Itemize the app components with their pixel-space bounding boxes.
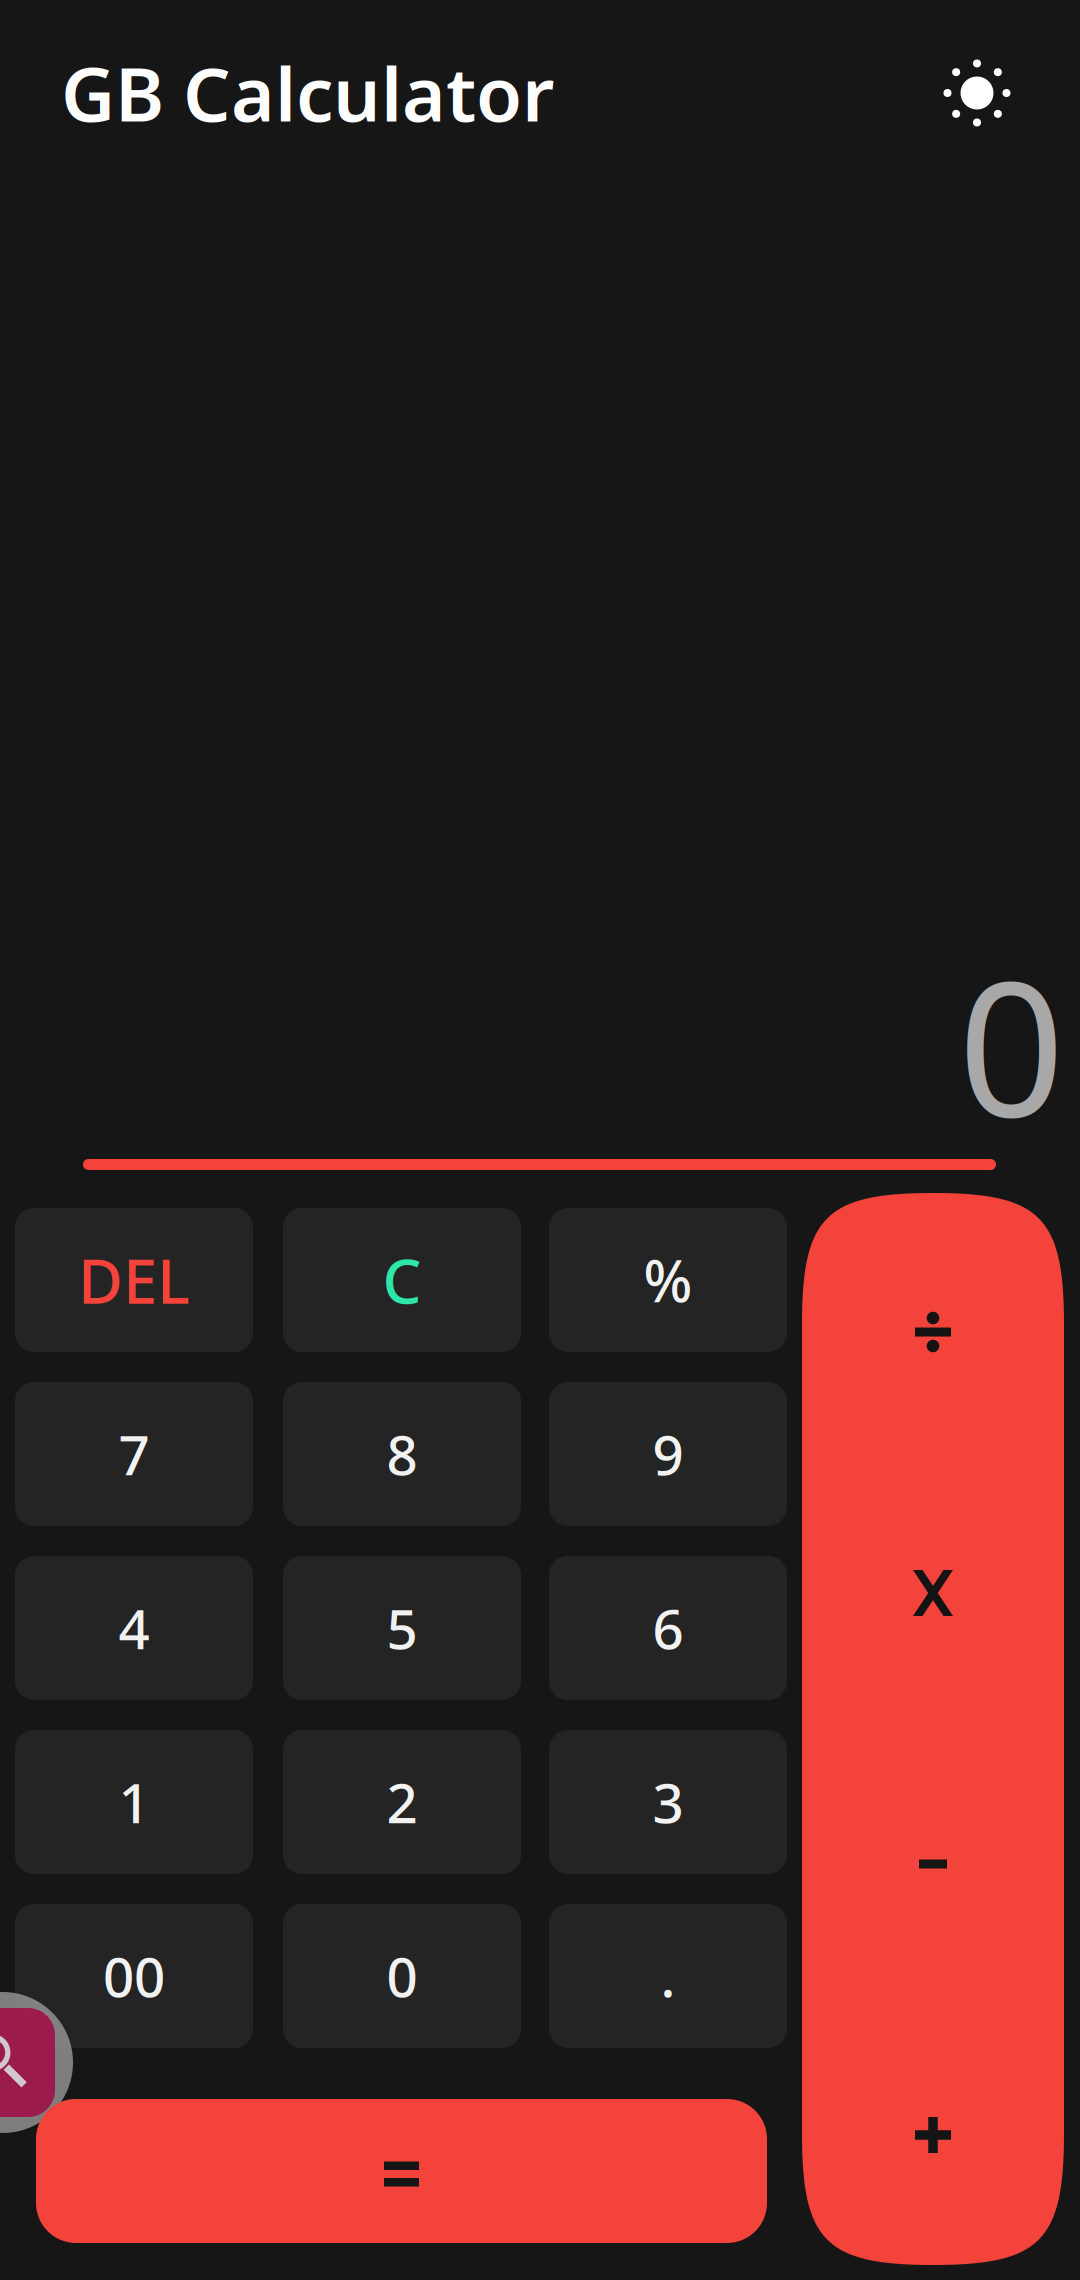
button[interactable]: % bbox=[549, 1208, 787, 1352]
staticText: 3 bbox=[652, 1766, 683, 1838]
button[interactable]: Multiply bbox=[802, 1461, 1064, 1729]
button[interactable]: C bbox=[283, 1208, 521, 1352]
staticText: 8 bbox=[386, 1418, 417, 1490]
button[interactable]: 5 bbox=[283, 1556, 521, 1700]
button[interactable]: 2 bbox=[283, 1730, 521, 1874]
staticText: % bbox=[643, 1242, 692, 1318]
button[interactable]: Add bbox=[802, 1997, 1064, 2265]
staticText: 9 bbox=[652, 1418, 683, 1490]
staticText: 0 bbox=[386, 1940, 417, 2012]
staticText: 6 bbox=[652, 1592, 683, 1664]
button[interactable]: Divide bbox=[802, 1193, 1064, 1461]
button[interactable]: Toggle brightness bbox=[917, 33, 1037, 153]
button[interactable]: 8 bbox=[283, 1382, 521, 1526]
staticText: DEL bbox=[78, 1239, 190, 1321]
button[interactable]: 7 bbox=[15, 1382, 253, 1526]
staticText: 4 bbox=[118, 1592, 149, 1664]
button[interactable]: 6 bbox=[549, 1556, 787, 1700]
staticText: 5 bbox=[386, 1592, 417, 1664]
staticText: 0 bbox=[958, 920, 1065, 1168]
staticText: 1 bbox=[118, 1766, 149, 1838]
staticText: GB Calculator bbox=[61, 43, 554, 142]
button[interactable]: 9 bbox=[549, 1382, 787, 1526]
button[interactable]: 1 bbox=[15, 1730, 253, 1874]
button[interactable]: 0 bbox=[283, 1904, 521, 2048]
button[interactable]: Search bbox=[0, 1992, 73, 2133]
button[interactable]: DEL bbox=[15, 1208, 253, 1352]
button[interactable]: Subtract bbox=[802, 1729, 1064, 1997]
staticText: . bbox=[660, 1940, 675, 2012]
button[interactable]: . bbox=[549, 1904, 787, 2048]
staticText: 2 bbox=[386, 1766, 417, 1838]
button[interactable]: 4 bbox=[15, 1556, 253, 1700]
button[interactable]: 00 bbox=[15, 1904, 253, 2048]
button[interactable]: Equals bbox=[36, 2099, 767, 2243]
staticText: 00 bbox=[103, 1940, 165, 2012]
button[interactable]: 3 bbox=[549, 1730, 787, 1874]
staticText: 7 bbox=[118, 1418, 149, 1490]
staticText: C bbox=[382, 1239, 421, 1321]
